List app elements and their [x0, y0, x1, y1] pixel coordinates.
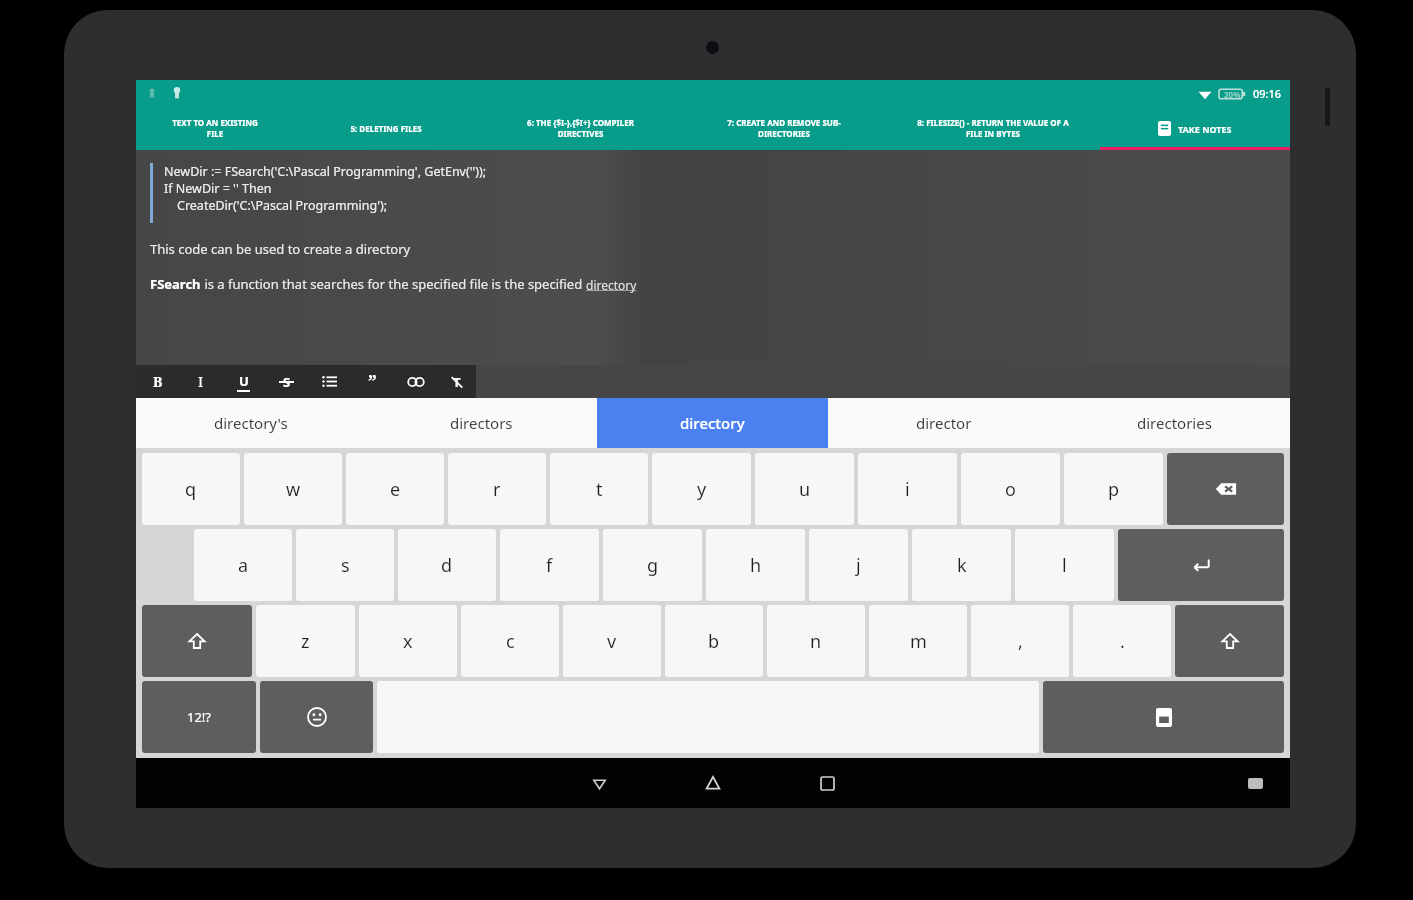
staticText: directors	[450, 413, 513, 433]
button[interactable]: s	[296, 529, 394, 601]
button[interactable]: TEXT TO AN EXISTING FILE	[136, 106, 293, 150]
button[interactable]: Quote	[351, 365, 394, 398]
button[interactable]: l	[1015, 529, 1114, 601]
staticText: h	[750, 553, 762, 578]
button[interactable]: t	[550, 453, 648, 525]
button[interactable]: Bulleted list	[308, 365, 351, 398]
staticText: If NewDir = '' Then	[164, 180, 272, 197]
staticText: U	[239, 372, 249, 390]
button[interactable]: Backspace	[1167, 453, 1284, 525]
staticText: directory's	[214, 413, 288, 433]
button[interactable]: directory	[597, 398, 828, 448]
button[interactable]: w	[244, 453, 342, 525]
staticText: 6: THE {$I-},{$I+} COMPILER DIRECTIVES	[527, 117, 634, 139]
staticText: l	[1062, 553, 1067, 578]
button[interactable]: j	[809, 529, 908, 601]
button[interactable]: k	[912, 529, 1011, 601]
staticText: I	[198, 372, 204, 391]
staticText: x	[403, 629, 413, 654]
staticText: FSearch	[150, 275, 201, 293]
staticText: 5: DELETING FILES	[350, 123, 422, 134]
staticText: 12!?	[187, 708, 212, 726]
button[interactable]: Shift	[1175, 605, 1284, 677]
button[interactable]: o	[961, 453, 1060, 525]
staticText: CreateDir('C:\Pascal Programming');	[164, 197, 388, 214]
button[interactable]: Strikethrough	[265, 365, 308, 398]
button[interactable]: m	[869, 605, 967, 677]
button[interactable]: p	[1064, 453, 1163, 525]
staticText: w	[286, 477, 301, 502]
staticText: t	[596, 477, 603, 502]
button[interactable]: Link	[394, 365, 437, 398]
button[interactable]: directories	[1059, 398, 1290, 448]
button[interactable]: z	[256, 605, 355, 677]
button[interactable]: ,	[971, 605, 1069, 677]
button[interactable]: Shift	[142, 605, 252, 677]
button[interactable]: g	[603, 529, 702, 601]
button[interactable]: d	[398, 529, 496, 601]
staticText: z	[301, 629, 310, 654]
staticText: directories	[1137, 413, 1212, 433]
staticText: NewDir := FSearch('C:\Pascal Programming…	[164, 163, 487, 180]
staticText: 20%	[1224, 89, 1241, 100]
button[interactable]: directory	[586, 277, 637, 293]
staticText: m	[910, 629, 927, 654]
button[interactable]: u	[755, 453, 854, 525]
button[interactable]: 8: FILESIZE() - RETURN THE VALUE OF A FI…	[886, 106, 1100, 150]
button[interactable]: .	[1073, 605, 1171, 677]
staticText: director	[916, 413, 972, 433]
staticText: q	[185, 477, 197, 502]
staticText: TEXT TO AN EXISTING FILE	[172, 117, 258, 139]
staticText: .	[1120, 629, 1125, 654]
button[interactable]: Hide keyboard	[1238, 766, 1272, 800]
staticText: y	[697, 477, 707, 502]
staticText: T	[453, 373, 461, 391]
button[interactable]: Bold	[136, 365, 179, 398]
button[interactable]: i	[858, 453, 957, 525]
button[interactable]: TAKE NOTES	[1100, 106, 1290, 150]
button[interactable]: Symbols	[142, 681, 256, 753]
button[interactable]: r	[448, 453, 546, 525]
button[interactable]: Enter	[1118, 529, 1284, 601]
button[interactable]: q	[142, 453, 240, 525]
button[interactable]: Emoji	[260, 681, 373, 753]
staticText: i	[905, 477, 910, 502]
button[interactable]: a	[194, 529, 292, 601]
button[interactable]: director	[828, 398, 1059, 448]
staticText: e	[390, 477, 401, 502]
button[interactable]: Keyboard settings	[1043, 681, 1284, 753]
staticText: B	[153, 372, 163, 391]
button[interactable]: h	[706, 529, 805, 601]
button[interactable]: f	[500, 529, 599, 601]
staticText: TAKE NOTES	[1178, 123, 1232, 135]
button[interactable]: Underline	[222, 365, 265, 398]
button[interactable]: Recent apps	[805, 761, 849, 805]
button[interactable]: y	[652, 453, 751, 525]
button[interactable]: 7: CREATE AND REMOVE SUB- DIRECTORIES	[682, 106, 886, 150]
staticText: o	[1005, 477, 1016, 502]
button[interactable]: Italic	[179, 365, 222, 398]
button[interactable]: Back	[577, 761, 621, 805]
staticText: directory	[680, 413, 745, 433]
staticText: ,	[1018, 629, 1023, 654]
button[interactable]: v	[563, 605, 661, 677]
staticText: k	[957, 553, 967, 578]
staticText: f	[546, 553, 553, 578]
button[interactable]: directors	[366, 398, 597, 448]
button[interactable]: x	[359, 605, 457, 677]
button[interactable]: directory's	[136, 398, 366, 448]
button[interactable]: c	[461, 605, 559, 677]
button[interactable]: 5: DELETING FILES	[293, 106, 478, 150]
button[interactable]: n	[767, 605, 865, 677]
staticText: ”	[368, 369, 377, 394]
button[interactable]: Clear formatting	[437, 365, 476, 398]
staticText: b	[708, 629, 720, 654]
button[interactable]: Home	[691, 761, 735, 805]
staticText: is a function that searches for the spec…	[201, 275, 586, 293]
staticText: j	[856, 553, 861, 578]
button[interactable]: b	[665, 605, 763, 677]
button[interactable]: e	[346, 453, 444, 525]
button[interactable]: 6: THE {$I-},{$I+} COMPILER DIRECTIVES	[478, 106, 682, 150]
staticText: 8: FILESIZE() - RETURN THE VALUE OF A FI…	[917, 117, 1069, 139]
